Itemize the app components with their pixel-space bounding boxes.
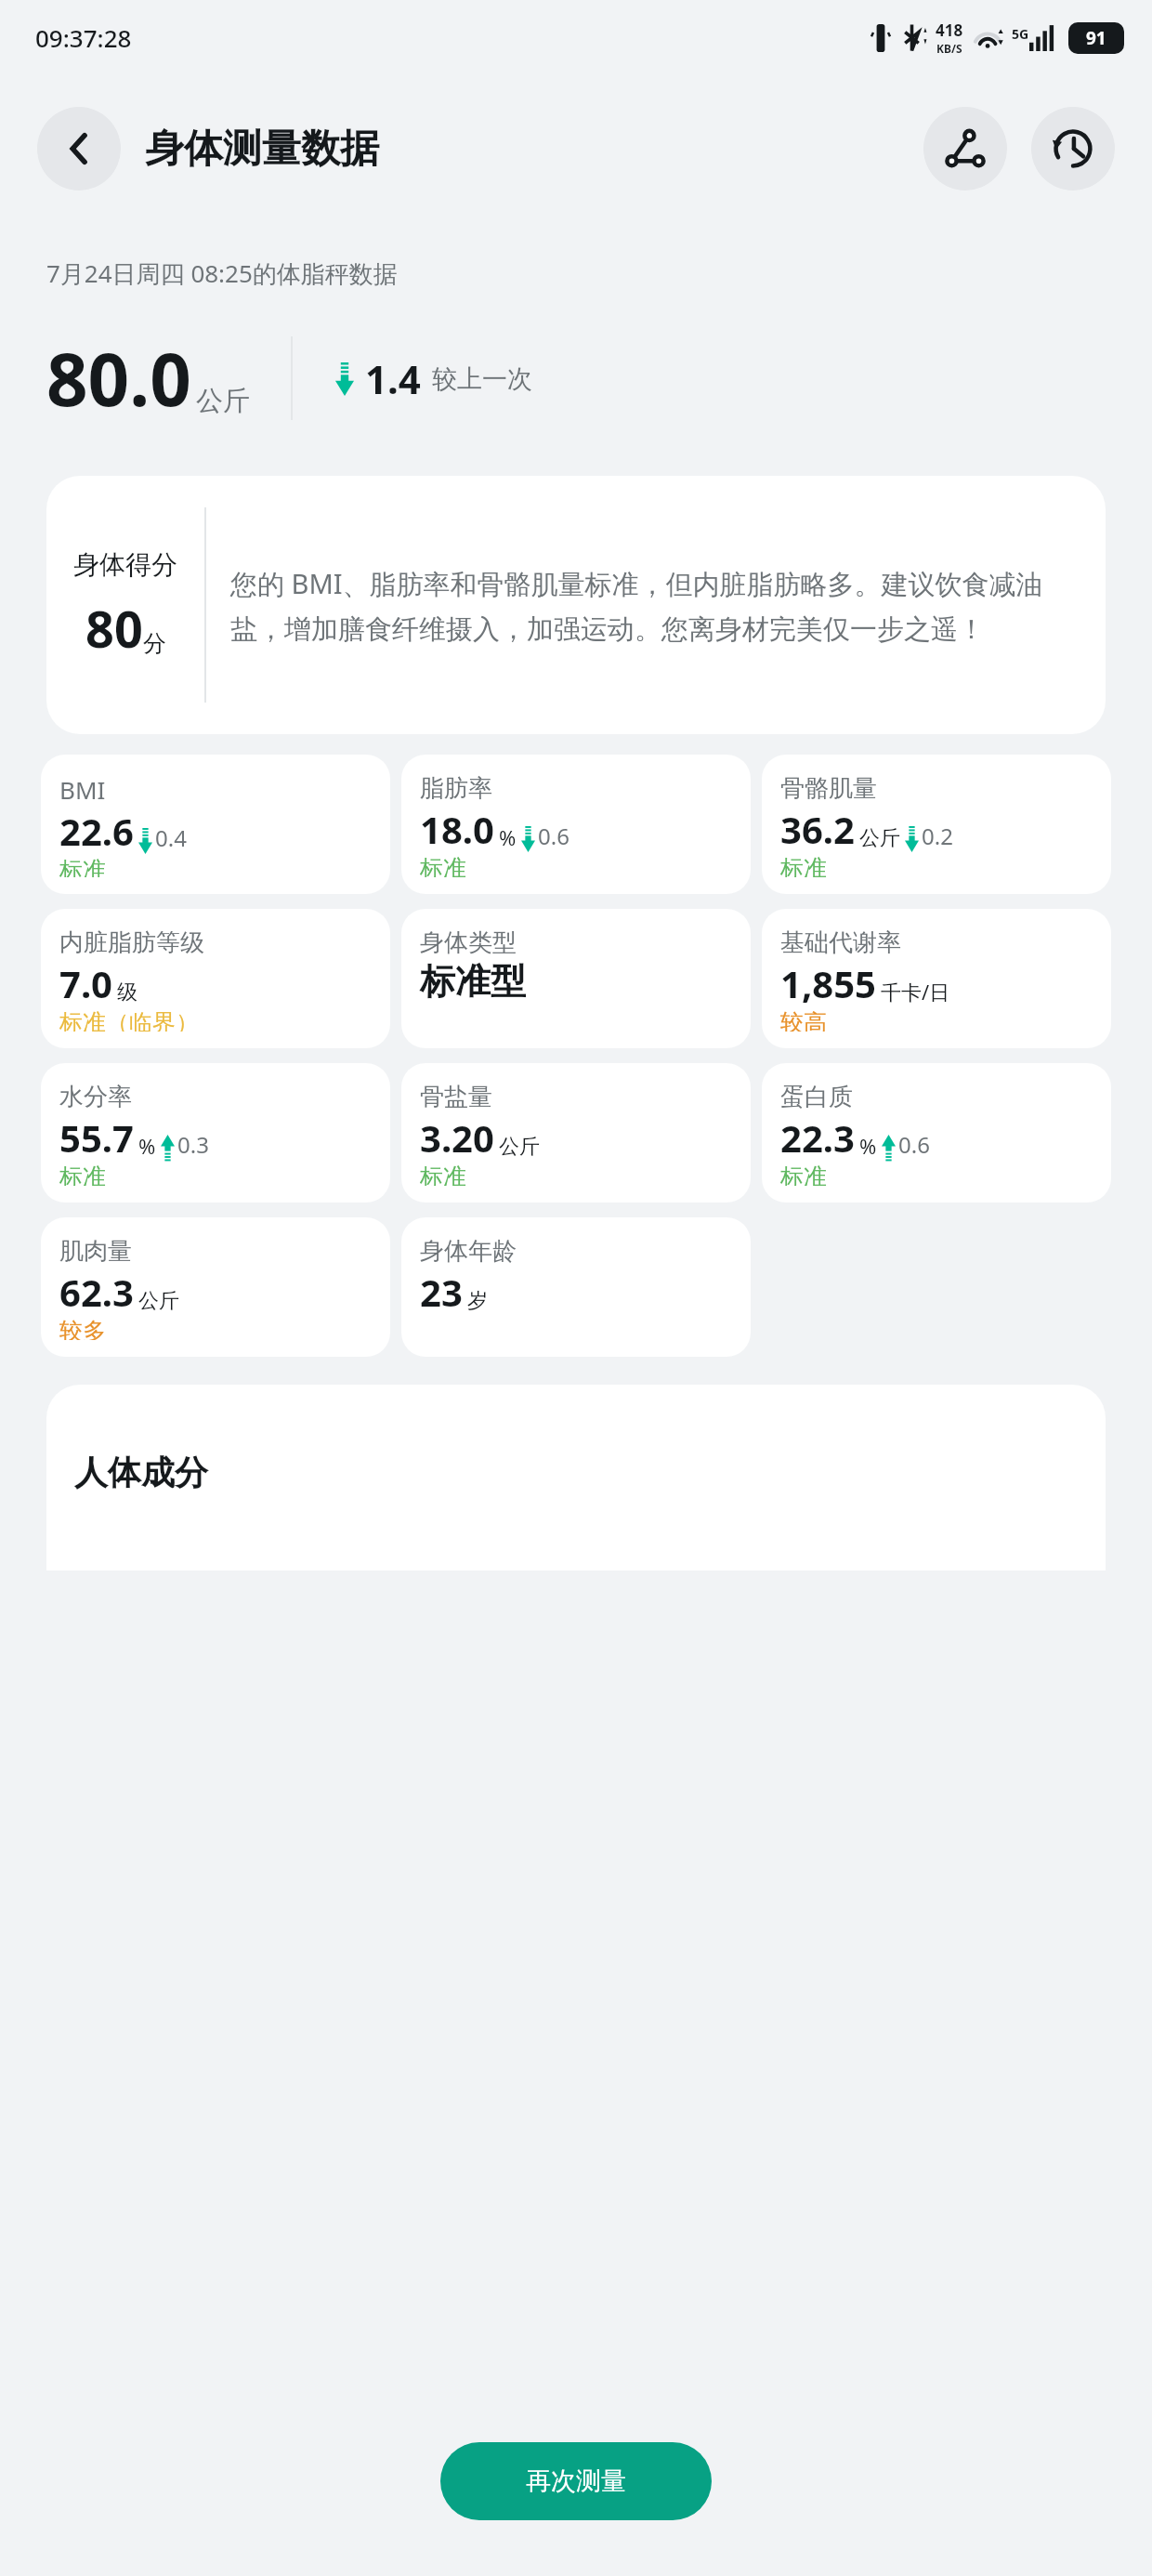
staticText: 公斤 [196, 384, 250, 418]
button[interactable]: 肌肉量 [41, 1217, 390, 1357]
staticText: 骨骼肌量 [780, 773, 877, 804]
staticText: 较多 [59, 1317, 106, 1340]
staticText: 骨盐量 [420, 1082, 492, 1112]
staticText: 80.0 [46, 329, 191, 427]
button[interactable]: 基础代谢率 [762, 909, 1111, 1048]
staticText: 标准 [420, 1163, 466, 1186]
staticText: 1.4 [365, 352, 421, 405]
staticText: 5G [1012, 25, 1029, 43]
staticText: 22.6 [59, 806, 134, 856]
staticText: 较高 [780, 1008, 827, 1032]
staticText: 80 [85, 594, 143, 663]
staticText: 再次测量 [526, 2465, 626, 2497]
button[interactable]: 人体成分 [46, 1385, 1106, 1571]
staticText: 人体成分 [74, 1452, 208, 1493]
staticText: 18.0 [420, 804, 494, 854]
staticText: % [859, 1132, 877, 1160]
staticText: 0.2 [922, 821, 953, 851]
staticText: 蛋白质 [780, 1082, 853, 1112]
staticText: 91 [1086, 26, 1106, 50]
staticText: 分 [143, 629, 166, 658]
staticText: 标准 [59, 1163, 106, 1186]
staticText: 36.2 [780, 804, 855, 854]
staticText: 标准（临界） [59, 1008, 199, 1032]
staticText: 岁 [467, 1288, 488, 1314]
button[interactable]: History [1031, 107, 1115, 191]
staticText: 身体测量数据 [145, 125, 379, 174]
staticText: 公斤 [859, 825, 900, 851]
button[interactable]: 内脏脂肪等级 [41, 909, 390, 1048]
staticText: % [138, 1132, 156, 1160]
staticText: 0.3 [177, 1129, 209, 1160]
staticText: 22.3 [780, 1112, 855, 1163]
staticText: 脂肪率 [420, 773, 492, 804]
staticText: BMI [59, 773, 106, 806]
staticText: 0.6 [538, 821, 569, 851]
staticText: % [499, 823, 517, 851]
staticText: 418 [936, 20, 963, 41]
staticText: 55.7 [59, 1112, 134, 1163]
staticText: 标准 [420, 854, 466, 877]
button[interactable]: 骨盐量 [401, 1063, 751, 1203]
staticText: 7.0 [59, 958, 112, 1008]
button[interactable]: BMI [41, 755, 390, 894]
button[interactable]: 身体类型 [401, 909, 751, 1048]
staticText: 23 [420, 1267, 463, 1317]
staticText: 较上一次 [432, 363, 532, 395]
staticText: 1,855 [780, 958, 876, 1008]
staticText: 水分率 [59, 1082, 132, 1112]
staticText: 公斤 [138, 1288, 179, 1314]
staticText: KB/S [936, 41, 962, 56]
button[interactable]: 骨骼肌量 [762, 755, 1111, 894]
button[interactable]: 脂肪率 [401, 755, 751, 894]
staticText: 内脏脂肪等级 [59, 927, 204, 958]
staticText: 您的 BMI、脂肪率和骨骼肌量标准，但内脏脂肪略多。建议饮食减油盐，增加膳食纤维… [230, 565, 1085, 646]
staticText: 肌肉量 [59, 1236, 132, 1267]
staticText: 标准 [780, 854, 827, 877]
button[interactable]: 蛋白质 [762, 1063, 1111, 1203]
staticText: 09:37:28 [35, 21, 132, 54]
staticText: 62.3 [59, 1267, 134, 1317]
staticText: 0.6 [898, 1129, 930, 1160]
button[interactable]: 身体年龄 [401, 1217, 751, 1357]
staticText: 标准型 [420, 959, 526, 1004]
staticText: 7月24日周四 08:25的体脂秤数据 [46, 256, 398, 290]
button[interactable]: 水分率 [41, 1063, 390, 1203]
staticText: 基础代谢率 [780, 927, 901, 958]
staticText: 身体年龄 [420, 1236, 517, 1267]
staticText: 身体得分 [73, 548, 177, 581]
button[interactable]: Share [923, 107, 1007, 191]
staticText: 标准 [59, 856, 106, 877]
staticText: 身体类型 [420, 927, 517, 958]
button[interactable]: 再次测量 [440, 2442, 712, 2520]
staticText: 3.20 [420, 1112, 494, 1163]
staticText: 标准 [780, 1163, 827, 1186]
staticText: 公斤 [499, 1134, 540, 1160]
button[interactable]: Back [37, 107, 121, 191]
staticText: 千卡/日 [881, 978, 950, 1005]
button[interactable]: 身体得分 [46, 476, 1106, 734]
staticText: 级 [117, 979, 137, 1005]
staticText: 0.4 [155, 822, 187, 853]
